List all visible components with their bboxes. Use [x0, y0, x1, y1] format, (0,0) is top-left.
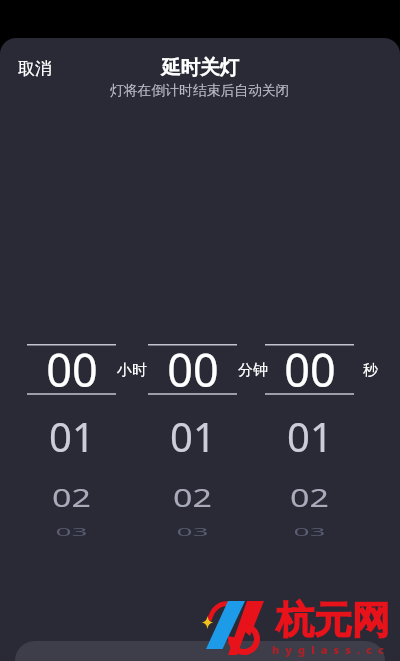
staticText: hyglass.cc — [272, 642, 390, 657]
button[interactable]: 分钟 01 — [148, 406, 237, 466]
staticText: 01 — [49, 409, 95, 463]
button[interactable]: 秒 03 — [265, 511, 354, 553]
button[interactable]: 取消 — [6, 53, 64, 84]
staticText: 03 — [293, 525, 326, 539]
staticText: 取消 — [18, 58, 52, 79]
staticText: 01 — [170, 409, 216, 463]
staticText: 03 — [55, 525, 88, 539]
button[interactable]: 分钟 00 — [148, 335, 237, 403]
staticText: 秒 — [363, 361, 378, 380]
button[interactable]: 秒 00 — [265, 335, 354, 403]
button[interactable]: 分钟 03 — [148, 511, 237, 553]
button[interactable]: 秒 01 — [265, 406, 354, 466]
staticText: 灯将在倒计时结束后自动关闭 — [110, 82, 290, 99]
button[interactable]: 小时 01 — [27, 406, 116, 466]
staticText: 01 — [287, 409, 333, 463]
staticText: 00 — [284, 339, 336, 400]
staticText: 02 — [173, 479, 212, 514]
staticText: 00 — [46, 339, 98, 400]
staticText: 02 — [52, 479, 91, 514]
staticText: 03 — [176, 525, 209, 539]
staticText: 分钟 — [238, 361, 268, 380]
button[interactable]: 秒 02 — [265, 471, 354, 522]
button[interactable]: 小时 03 — [27, 511, 116, 553]
staticText: 杭元网 — [276, 596, 390, 644]
staticText: 小时 — [117, 361, 147, 380]
staticText: 延时关灯 — [161, 55, 239, 80]
staticText: 02 — [290, 479, 329, 514]
staticText: 00 — [167, 339, 219, 400]
button[interactable]: 小时 02 — [27, 471, 116, 522]
button[interactable]: 分钟 02 — [148, 471, 237, 522]
button[interactable]: 小时 00 — [27, 335, 116, 403]
